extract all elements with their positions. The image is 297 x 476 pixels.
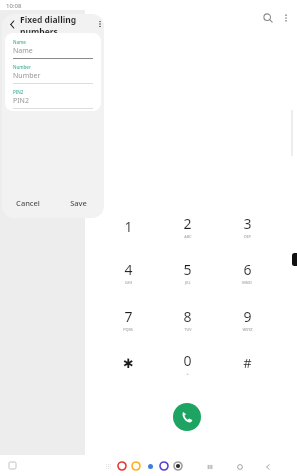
staticText: 1 (124, 217, 133, 236)
staticText: 2 (183, 214, 192, 233)
button[interactable]: More options (277, 9, 295, 27)
button[interactable]: 8 (164, 299, 210, 339)
staticText: 10:08 (6, 2, 22, 10)
staticText: MNO (242, 280, 252, 285)
button[interactable]: Keyboard (8, 461, 17, 470)
button[interactable]: App (159, 461, 169, 471)
staticText: 0 (183, 351, 192, 370)
staticText: GHI (125, 280, 132, 285)
staticText: PQRS (123, 327, 133, 332)
button[interactable]: Cancel (2, 190, 53, 216)
button[interactable]: 0 (164, 343, 210, 383)
button[interactable]: 2 (164, 206, 210, 246)
button[interactable]: # (224, 343, 270, 383)
staticText: 4 (124, 260, 133, 279)
staticText: 6 (243, 260, 252, 279)
staticText: # (243, 354, 252, 372)
staticText: 3 (243, 214, 252, 233)
button[interactable]: 6 (224, 252, 270, 292)
button[interactable]: Search (259, 9, 277, 27)
button[interactable]: 5 (164, 252, 210, 292)
staticText: JKL (185, 280, 191, 285)
button[interactable]: 3 (224, 206, 270, 246)
staticText: 8 (183, 307, 192, 326)
button[interactable]: 1 (105, 206, 151, 246)
staticText: WXYZ (242, 327, 253, 332)
staticText: Number (13, 64, 31, 70)
button[interactable]: Back (6, 18, 18, 30)
staticText: PIN2 (13, 89, 24, 95)
button[interactable]: 7 (105, 299, 151, 339)
button[interactable]: 9 (224, 299, 270, 339)
button[interactable]: App (117, 461, 127, 471)
staticText: Name (13, 46, 33, 56)
button[interactable]: App (173, 461, 183, 471)
button[interactable]: Call (173, 403, 201, 431)
staticText: 9 (243, 307, 252, 326)
staticText: + (186, 371, 189, 376)
staticText: 5 (183, 260, 192, 279)
staticText: DEF (244, 234, 251, 239)
staticText: Number (13, 71, 41, 81)
staticText: ABC (184, 234, 192, 239)
staticText: ✱ (123, 356, 134, 371)
button[interactable]: ✱ (105, 343, 151, 383)
button[interactable]: App (131, 461, 141, 471)
staticText: Cancel (16, 198, 40, 208)
button[interactable]: Save (53, 190, 104, 216)
staticText: TUV (184, 327, 192, 332)
staticText: Save (70, 198, 87, 208)
staticText: Name (13, 39, 26, 45)
button[interactable]: Back (262, 461, 273, 472)
staticText: Fixed dialling numbers (20, 14, 100, 33)
button[interactable]: Home (234, 461, 245, 472)
button[interactable]: Recents (204, 461, 215, 472)
button[interactable]: 4 (105, 252, 151, 292)
staticText: PIN2 (13, 96, 29, 106)
staticText: 7 (124, 307, 133, 326)
button[interactable]: App (145, 461, 155, 471)
button[interactable]: All apps (103, 461, 113, 471)
